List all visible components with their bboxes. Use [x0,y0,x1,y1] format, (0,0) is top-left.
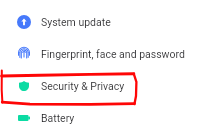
other: Security and Privacy [19,81,29,91]
other: System update [17,15,31,29]
staticText: Battery [41,112,75,124]
button[interactable]: Fingerprint, face and password [0,38,201,70]
other: Battery [18,115,30,121]
other: Fingerprint, face and password [18,48,30,60]
staticText: Fingerprint, face and password [41,48,185,60]
button[interactable]: Security and Privacy [0,70,201,102]
staticText: System update [41,16,111,28]
staticText: Security & Privacy [41,80,125,92]
button[interactable]: System update [0,6,201,38]
button[interactable]: Battery [0,102,201,134]
